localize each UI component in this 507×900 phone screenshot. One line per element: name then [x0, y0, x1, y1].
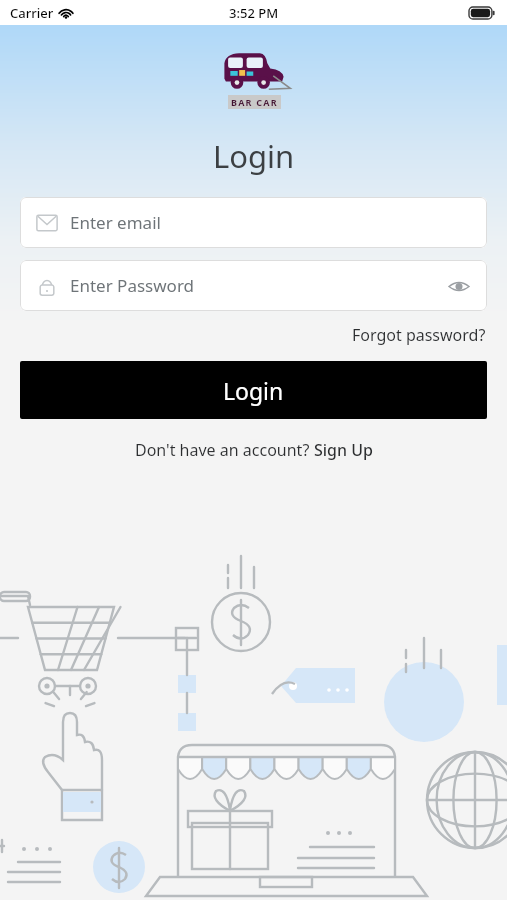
- staticText: 3:52 PM: [229, 4, 279, 22]
- staticText: Carrier: [10, 4, 54, 22]
- staticText: Enter Password: [70, 274, 195, 297]
- staticText: Sign Up: [314, 439, 373, 461]
- button[interactable]: Login: [20, 361, 487, 419]
- button[interactable]: Show password: [447, 274, 471, 298]
- button[interactable]: Sign Up: [314, 439, 373, 461]
- button[interactable]: Forgot password?: [349, 321, 489, 349]
- staticText: Enter email: [70, 211, 161, 234]
- staticText: BAR CAR: [231, 96, 278, 108]
- staticText: Forgot password?: [352, 324, 486, 346]
- button[interactable]: Enter Password: [20, 260, 487, 311]
- staticText: Login: [223, 375, 284, 406]
- staticText: Don't have an account?: [135, 439, 314, 461]
- button[interactable]: Enter email: [20, 197, 487, 248]
- staticText: Login: [0, 135, 507, 177]
